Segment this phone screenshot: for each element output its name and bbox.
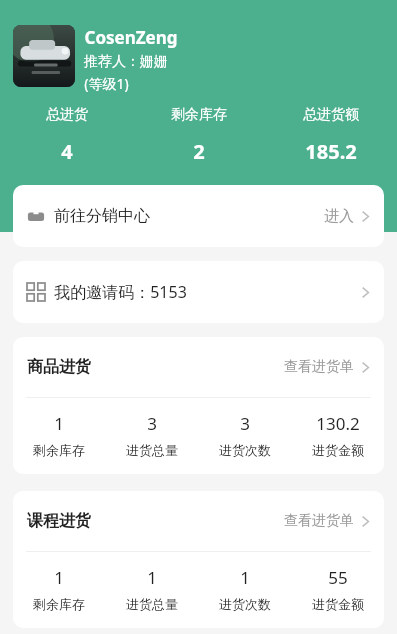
button[interactable]: 1 <box>13 566 105 612</box>
other: Distribution center <box>27 207 45 225</box>
staticText: 进货总量 <box>126 442 178 458</box>
button[interactable]: 课程进货 <box>13 491 384 551</box>
staticText: 进货总量 <box>126 596 178 612</box>
staticText: 130.2 <box>316 412 360 435</box>
staticText: 进货次数 <box>219 442 271 458</box>
button[interactable]: 剩余库存 <box>133 106 265 165</box>
staticText: 3 <box>240 412 250 435</box>
staticText: 前往分销中心 <box>54 206 150 226</box>
staticText: 剩余库存 <box>33 442 85 458</box>
staticText: 剩余库存 <box>33 596 85 612</box>
other: Open <box>361 360 370 375</box>
staticText: (等级1) <box>84 74 129 93</box>
button[interactable]: 1 <box>198 566 291 612</box>
staticText: 1 <box>147 566 157 589</box>
staticText: 进货次数 <box>219 596 271 612</box>
staticText: 总进货额 <box>303 106 359 124</box>
staticText: 3 <box>147 412 157 435</box>
other: Open <box>361 285 370 300</box>
other: Open <box>361 514 370 529</box>
staticText: 商品进货 <box>27 357 91 377</box>
staticText: 查看进货单 <box>284 512 354 530</box>
button[interactable]: 1 <box>105 566 198 612</box>
button[interactable]: CosenZeng <box>13 25 397 93</box>
staticText: 1 <box>54 412 64 435</box>
staticText: 推荐人：姗姗 <box>84 53 168 71</box>
button[interactable]: 1 <box>13 412 105 458</box>
button[interactable]: 130.2 <box>291 412 384 458</box>
staticText: 1 <box>54 566 64 589</box>
staticText: 185.2 <box>305 138 357 165</box>
staticText: 剩余库存 <box>171 106 227 124</box>
button[interactable]: 3 <box>105 412 198 458</box>
staticText: 查看进货单 <box>284 358 354 376</box>
staticText: 4 <box>61 138 73 165</box>
button[interactable]: 商品进货 <box>13 337 384 397</box>
button[interactable]: 总进货额 <box>265 106 397 165</box>
staticText: 课程进货 <box>27 511 91 531</box>
other: Open <box>361 209 370 224</box>
button[interactable]: 总进货 <box>0 106 133 165</box>
staticText: 55 <box>328 566 348 589</box>
button[interactable]: Distribution center <box>13 185 384 247</box>
staticText: 进货金额 <box>312 442 364 458</box>
button[interactable]: 3 <box>198 412 291 458</box>
staticText: 我的邀请码：5153 <box>54 281 187 303</box>
staticText: 总进货 <box>46 106 88 124</box>
staticText: 1 <box>240 566 250 589</box>
button[interactable]: 55 <box>291 566 384 612</box>
staticText: 进入 <box>324 207 354 226</box>
staticText: 2 <box>193 138 205 165</box>
staticText: 进货金额 <box>312 596 364 612</box>
other: My invite code <box>27 283 45 301</box>
button[interactable]: My invite code <box>13 261 384 323</box>
staticText: CosenZeng <box>84 26 178 49</box>
